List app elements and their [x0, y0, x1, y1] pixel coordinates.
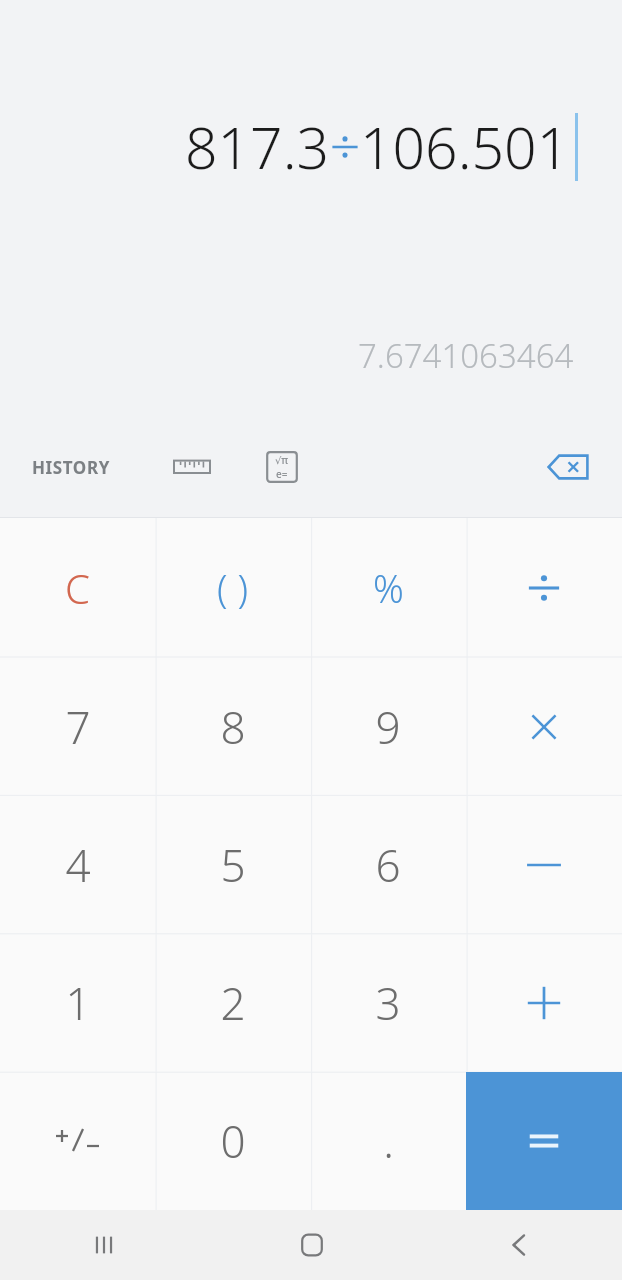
- button[interactable]: C: [0, 518, 155, 657]
- staticText: .: [383, 1111, 394, 1171]
- staticText: 3: [375, 973, 401, 1033]
- button[interactable]: 7: [0, 657, 155, 796]
- button[interactable]: [466, 657, 622, 796]
- staticText: 7.6741063464: [358, 333, 574, 378]
- button[interactable]: Backspace: [536, 435, 600, 499]
- staticText: 4: [65, 835, 91, 895]
- button[interactable]: Recents: [0, 1210, 208, 1280]
- button[interactable]: ( ): [155, 518, 310, 657]
- staticText: 106.501: [360, 108, 570, 186]
- staticText: 6: [375, 835, 401, 895]
- staticText: 7: [65, 697, 91, 757]
- button[interactable]: 6: [310, 796, 466, 934]
- button[interactable]: [466, 518, 622, 657]
- button[interactable]: Unit converter: [164, 439, 220, 495]
- staticText: %: [373, 562, 404, 614]
- button[interactable]: 1: [0, 934, 155, 1072]
- button[interactable]: Home: [208, 1210, 415, 1280]
- staticText: 9: [375, 697, 401, 757]
- button[interactable]: 2: [155, 934, 310, 1072]
- staticText: 5: [220, 835, 246, 895]
- staticText: √π: [275, 453, 289, 467]
- button[interactable]: [466, 796, 622, 934]
- staticText: 8: [220, 697, 246, 757]
- staticText: 2: [220, 973, 246, 1033]
- button[interactable]: 0: [155, 1072, 310, 1210]
- staticText: HISTORY: [32, 456, 110, 479]
- button[interactable]: [466, 934, 622, 1072]
- button[interactable]: HISTORY: [24, 446, 118, 489]
- button[interactable]: Equals: [466, 1072, 622, 1210]
- button[interactable]: 8: [155, 657, 310, 796]
- button[interactable]: 4: [0, 796, 155, 934]
- staticText: ( ): [217, 562, 248, 614]
- staticText: 1: [65, 973, 91, 1033]
- staticText: e=: [276, 467, 288, 481]
- staticText: 0: [220, 1111, 246, 1171]
- button[interactable]: Scientific calculator: [254, 439, 310, 495]
- staticText: 817.3: [185, 108, 330, 186]
- button[interactable]: .: [310, 1072, 466, 1210]
- button[interactable]: 9: [310, 657, 466, 796]
- staticText: C: [65, 561, 90, 615]
- button[interactable]: Back: [415, 1210, 622, 1280]
- button[interactable]: %: [310, 518, 466, 657]
- button[interactable]: 5: [155, 796, 310, 934]
- button[interactable]: [0, 1072, 155, 1210]
- button[interactable]: 3: [310, 934, 466, 1072]
